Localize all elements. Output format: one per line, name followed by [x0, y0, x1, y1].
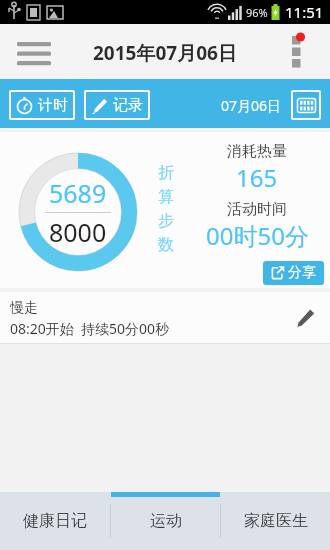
staticText: 慢走: [10, 299, 38, 317]
button[interactable]: Menu: [10, 29, 58, 77]
staticText: 165: [236, 161, 278, 194]
staticText: 步: [158, 211, 174, 231]
staticText: 数: [158, 235, 174, 255]
staticText: 2015年07月06日: [93, 40, 237, 66]
button[interactable]: 计时: [9, 90, 75, 120]
staticText: 记录: [113, 96, 143, 115]
staticText: 5689: [49, 176, 107, 210]
staticText: 96%: [246, 5, 268, 20]
staticText: 08:20开始 持续50分00秒: [10, 319, 170, 338]
staticText: 健康日记: [23, 511, 87, 531]
staticText: 11:51: [285, 2, 324, 22]
staticText: 折: [158, 163, 174, 183]
button[interactable]: 健康日记: [0, 492, 110, 550]
button[interactable]: 运动: [111, 492, 220, 550]
button[interactable]: 家庭医生: [221, 492, 330, 550]
staticText: 00时50分: [206, 219, 309, 252]
staticText: 算: [158, 187, 174, 207]
button[interactable]: Edit: [288, 301, 322, 335]
button[interactable]: 慢走: [0, 292, 330, 344]
staticText: 计时: [38, 96, 68, 115]
button[interactable]: 记录: [84, 90, 150, 120]
staticText: 07月06日: [221, 96, 282, 115]
button[interactable]: Calendar: [291, 90, 321, 120]
staticText: 分享: [288, 264, 316, 282]
staticText: 家庭医生: [244, 511, 308, 531]
staticText: 8000: [49, 215, 107, 249]
staticText: 消耗热量: [227, 142, 287, 161]
staticText: 运动: [150, 511, 182, 531]
staticText: 活动时间: [227, 200, 287, 219]
button[interactable]: 分享: [263, 261, 324, 285]
button[interactable]: More options: [278, 31, 322, 75]
